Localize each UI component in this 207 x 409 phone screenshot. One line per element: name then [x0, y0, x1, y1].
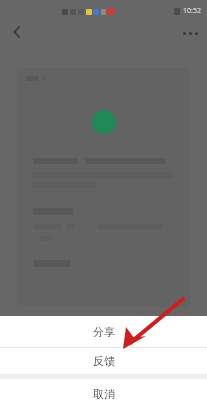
staticText: 反馈 [93, 354, 115, 368]
staticText: 分享 [93, 325, 115, 339]
button[interactable]: 分享 [0, 316, 207, 347]
button[interactable]: 反馈 [0, 348, 207, 374]
staticText: 取消 [93, 387, 115, 401]
button[interactable]: 取消 [0, 379, 207, 409]
button[interactable]: Back [0, 15, 34, 49]
staticText: 10:52 [183, 6, 201, 16]
button[interactable]: More options [173, 16, 207, 50]
